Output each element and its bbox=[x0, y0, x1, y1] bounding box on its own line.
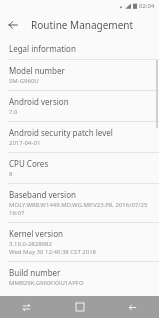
button[interactable]: Back bbox=[106, 296, 159, 318]
button[interactable]: Back bbox=[0, 12, 26, 38]
staticText: MOLY.WR8.W1449.MD.WG.MP.V23.P8, 2016/07/… bbox=[9, 201, 148, 217]
button[interactable]: Legal information bbox=[0, 38, 159, 59]
staticText: Android security patch level bbox=[9, 127, 113, 138]
staticText: 02:04 bbox=[139, 2, 155, 10]
button[interactable]: Home bbox=[53, 296, 106, 318]
staticText: Build number bbox=[9, 267, 61, 278]
staticText: Baseband version bbox=[9, 189, 76, 200]
staticText: 8 bbox=[9, 170, 13, 178]
button[interactable]: Kernel version bbox=[0, 223, 159, 261]
button[interactable]: Recents bbox=[0, 296, 53, 318]
staticText: Kernel version bbox=[9, 228, 63, 239]
staticText: 2017-04-01 bbox=[9, 139, 41, 147]
button[interactable]: Android version bbox=[0, 91, 159, 121]
button[interactable]: Android security patch level bbox=[0, 122, 159, 152]
staticText: Model number bbox=[9, 65, 65, 76]
staticText: Routine Management bbox=[31, 18, 134, 32]
button[interactable]: Build number bbox=[0, 262, 159, 292]
staticText: 3.10.0-2828982 Wed May 30 12:40:38 CST 2… bbox=[9, 240, 97, 256]
staticText: SM-G960U bbox=[9, 77, 39, 85]
staticText: 7.0 bbox=[9, 108, 18, 116]
staticText: Legal information bbox=[9, 43, 76, 54]
button[interactable]: CPU Cores bbox=[0, 153, 159, 183]
button[interactable]: Baseband version bbox=[0, 184, 159, 222]
staticText: MMB29K.G960FXXU1APFO bbox=[9, 279, 84, 287]
staticText: CPU Cores bbox=[9, 158, 49, 169]
staticText: Android version bbox=[9, 96, 69, 107]
button[interactable]: Model number bbox=[0, 60, 159, 90]
